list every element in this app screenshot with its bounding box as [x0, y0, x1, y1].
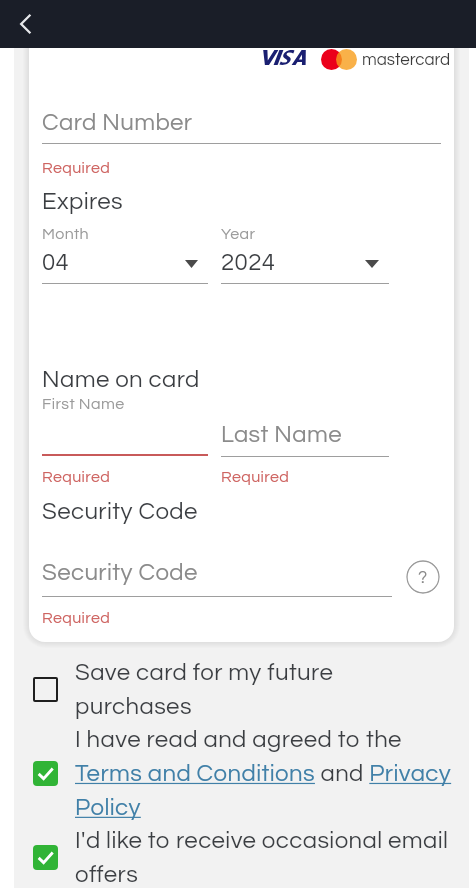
staticText: I have read and agreed to the Terms and …	[75, 727, 454, 820]
staticText: Last Name	[221, 422, 342, 447]
staticText: Required	[42, 160, 111, 176]
button[interactable]: I'd like to receive occasional email off…	[33, 828, 454, 887]
staticText: Save card for my future purchases	[75, 660, 454, 719]
staticText: ?	[418, 568, 428, 587]
staticText: Security Code	[42, 499, 198, 524]
staticText: Card Number	[42, 110, 193, 135]
staticText: Required	[221, 469, 290, 485]
button[interactable]: I have read and agreed to the Terms and …	[33, 727, 454, 820]
staticText: First Name	[42, 396, 125, 412]
staticText: Required	[42, 469, 111, 485]
staticText: Month	[42, 226, 90, 242]
staticText: Expires	[42, 189, 124, 214]
staticText: mastercard	[362, 51, 451, 69]
button[interactable]: Back	[2, 0, 50, 48]
button[interactable]: Security code help	[406, 560, 440, 594]
staticText: Name on card	[42, 367, 200, 392]
staticText: 2024	[221, 250, 276, 275]
staticText: Year	[221, 226, 256, 242]
button[interactable]: Save card for my future purchases	[33, 660, 454, 719]
staticText: I'd like to receive occasional email off…	[75, 828, 454, 887]
staticText: 04	[42, 250, 70, 275]
staticText: Security Code	[42, 560, 198, 585]
staticText: Required	[42, 610, 111, 626]
